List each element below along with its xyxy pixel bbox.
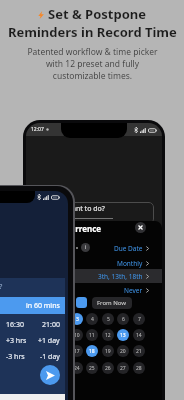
button[interactable]: 10 [71, 329, 83, 341]
staticText: 24 [74, 365, 80, 372]
staticText: Reminders in Record Time [8, 23, 177, 41]
staticText: 26 [105, 365, 111, 372]
staticText: 25 [89, 365, 95, 372]
staticText: 21:00 [42, 320, 60, 330]
staticText: 18 [89, 348, 95, 355]
staticText: 1 [45, 316, 48, 323]
button[interactable]: 17 [71, 345, 83, 357]
button[interactable]: Monthly [26, 256, 162, 270]
staticText: 27 [120, 365, 126, 372]
staticText: ant to do? [72, 204, 105, 214]
staticText: o? [0, 282, 3, 292]
button[interactable]: 21 [133, 345, 145, 357]
staticText: 3th, 13th, 18th [98, 272, 143, 281]
staticText: 6 [122, 316, 125, 323]
staticText: 19 [105, 348, 111, 355]
button[interactable]: 27 [117, 362, 129, 374]
button[interactable]: 14 [133, 329, 145, 341]
staticText: 4 [91, 316, 94, 323]
button[interactable]: 11 [86, 329, 98, 341]
staticText: 12 [105, 332, 111, 339]
staticText: -3 hrs [6, 352, 25, 362]
staticText: 3 [76, 316, 79, 323]
staticText: Patented workflow & time picker with 12 … [27, 46, 158, 82]
button[interactable]: 6 [117, 313, 129, 325]
staticText: 7 [138, 316, 141, 323]
button[interactable]: 22 [40, 362, 52, 374]
button[interactable]: 2 [55, 313, 67, 325]
button[interactable]: 1 [40, 313, 52, 325]
staticText: -1 day [40, 352, 60, 362]
button[interactable]: 19 [102, 345, 114, 357]
button[interactable]: 15 [40, 345, 52, 357]
staticText: +1 day [38, 336, 60, 346]
button[interactable]: 3 [71, 313, 83, 325]
button[interactable]: in 60 mins [0, 297, 65, 314]
staticText: 5 [107, 316, 110, 323]
staticText: +3 hrs [6, 336, 27, 346]
button[interactable]: 23 [55, 362, 67, 374]
button[interactable]: 16 [55, 345, 67, 357]
staticText: Monthly [117, 259, 143, 268]
staticText: From Now [97, 299, 127, 307]
staticText: 10 [74, 332, 80, 339]
button[interactable]: 24 [71, 362, 83, 374]
staticText: 14 [136, 332, 142, 339]
button[interactable]: 12 [102, 329, 114, 341]
button[interactable]: 9 [55, 329, 67, 341]
button[interactable]: 25 [86, 362, 98, 374]
staticText: 28 [136, 365, 142, 372]
button[interactable]: 4 [86, 313, 98, 325]
staticText: in 60 mins [26, 301, 60, 311]
staticText: urrence [70, 223, 102, 234]
button[interactable]: 7 [133, 313, 145, 325]
button[interactable] [76, 297, 87, 308]
staticText: 22 [43, 365, 49, 372]
button[interactable]: 13 [117, 329, 129, 341]
staticText: Never [124, 286, 143, 295]
button[interactable]: Close [135, 222, 146, 233]
button[interactable]: Send [40, 365, 60, 385]
staticText: 13 [120, 332, 126, 339]
staticText: 20 [120, 348, 126, 355]
staticText: i [85, 244, 87, 251]
staticText: 15 [43, 348, 49, 355]
button[interactable]: Due Date [26, 241, 162, 255]
staticText: Set & Postpone [48, 5, 146, 23]
staticText: 17 [74, 348, 80, 355]
staticText: 12:07 [31, 126, 44, 133]
button[interactable]: 26 [102, 362, 114, 374]
button[interactable]: 18 [86, 345, 98, 357]
staticText: Due Date [114, 244, 143, 253]
button[interactable]: 20 [117, 345, 129, 357]
staticText: 11 [89, 332, 95, 339]
button[interactable]: 3th, 13th, 18th [26, 269, 162, 283]
button[interactable]: Never [26, 283, 162, 297]
staticText: 21 [136, 348, 142, 355]
button[interactable]: 28 [133, 362, 145, 374]
staticText: 16:30 [6, 320, 24, 330]
button[interactable]: 5 [102, 313, 114, 325]
button[interactable]: From Now [92, 297, 132, 309]
staticText: 23 [58, 365, 64, 372]
button[interactable]: 8 [40, 329, 52, 341]
